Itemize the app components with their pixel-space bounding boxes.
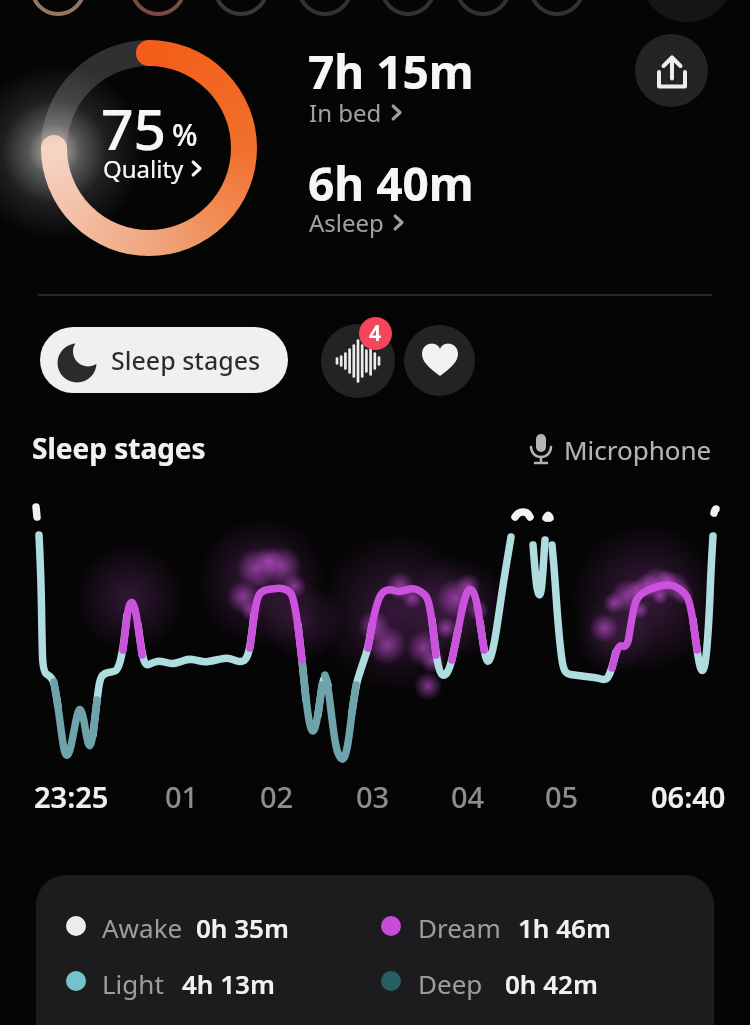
button[interactable] <box>404 325 475 396</box>
button[interactable]: Asleep <box>309 206 404 239</box>
staticText: 4h 13m <box>182 966 275 1001</box>
button[interactable]: Quality <box>103 152 202 185</box>
staticText: Deep <box>418 966 483 1001</box>
staticText: 01 <box>165 777 199 816</box>
staticText: 0h 42m <box>505 966 598 1001</box>
staticText: 04 <box>451 777 485 816</box>
staticText: Sleep stages <box>111 343 261 377</box>
staticText: Awake <box>102 910 183 945</box>
staticText: 02 <box>260 777 294 816</box>
button[interactable]: In bed <box>309 96 402 129</box>
staticText: 75 <box>101 89 167 167</box>
staticText: 0h 35m <box>196 910 289 945</box>
staticText: 05 <box>545 777 579 816</box>
button[interactable] <box>321 324 395 398</box>
staticText: In bed <box>309 96 382 129</box>
staticText: 06:40 <box>651 777 726 816</box>
staticText: Microphone <box>564 432 712 467</box>
staticText: 4 <box>369 319 382 348</box>
button[interactable] <box>635 34 708 107</box>
button[interactable]: Sleep stages <box>40 327 288 393</box>
staticText: Dream <box>418 910 501 945</box>
staticText: % <box>172 114 198 155</box>
button[interactable]: Awake <box>36 875 714 1025</box>
staticText: Quality <box>103 152 184 185</box>
staticText: Light <box>102 966 164 1001</box>
staticText: 1h 46m <box>518 910 611 945</box>
staticText: 03 <box>356 777 390 816</box>
staticText: 6h 40m <box>308 152 474 215</box>
staticText: 23:25 <box>34 777 109 816</box>
staticText: Asleep <box>309 206 384 239</box>
button[interactable]: Microphone <box>527 430 712 468</box>
staticText: 7h 15m <box>308 40 474 103</box>
staticText: Sleep stages <box>32 429 206 467</box>
